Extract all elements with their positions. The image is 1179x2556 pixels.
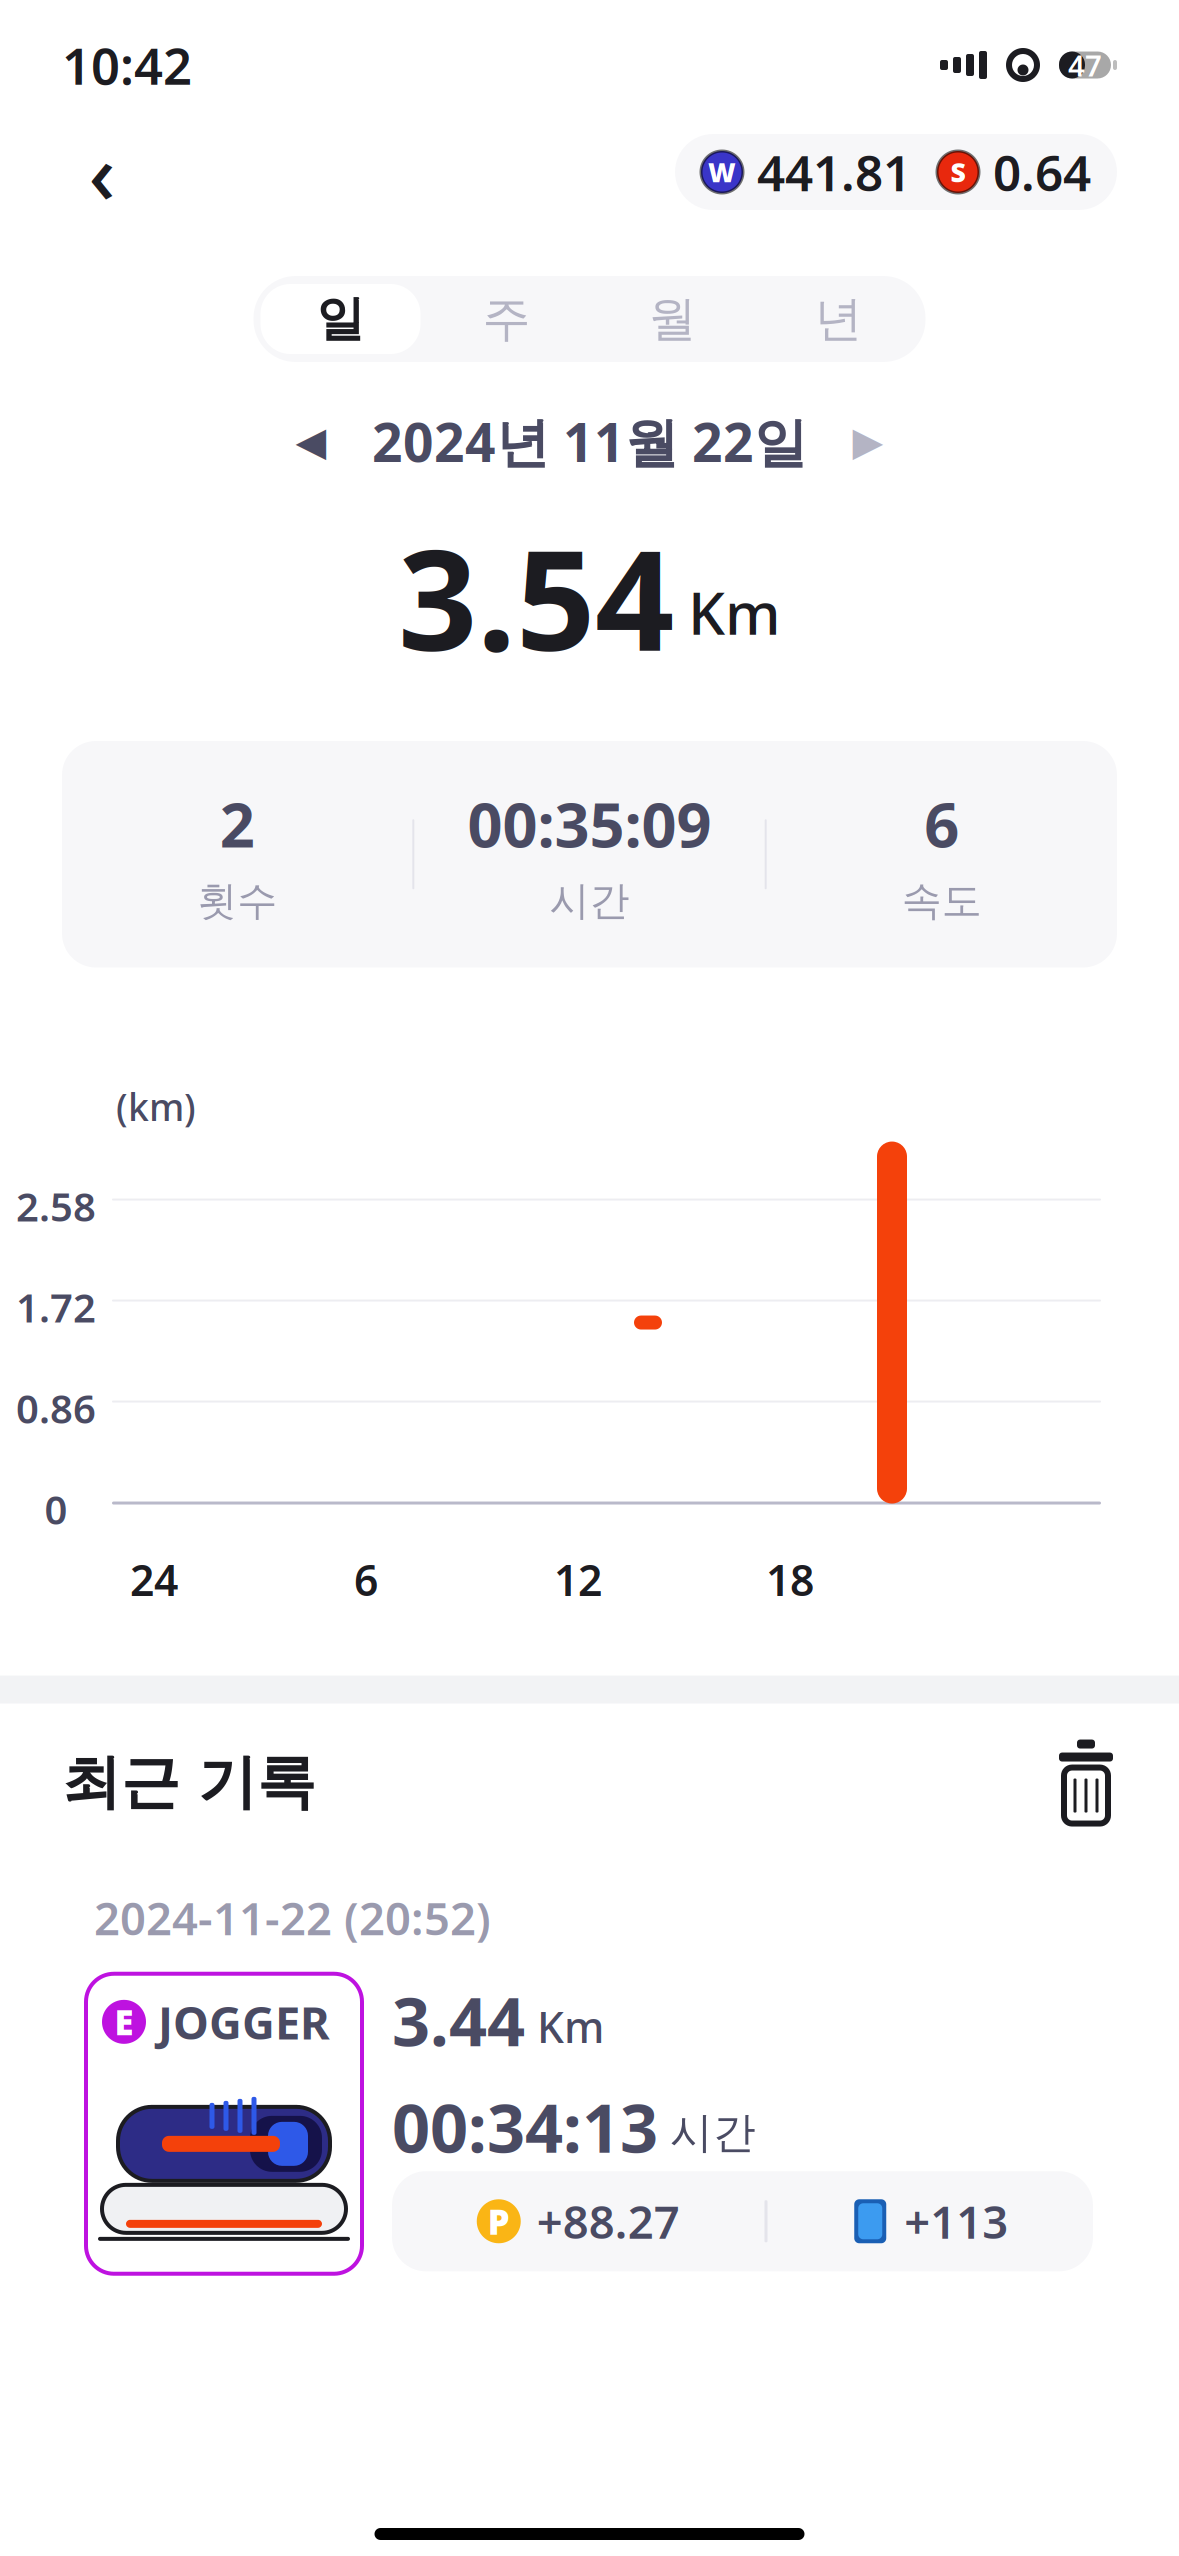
staticText: 1.72 (16, 1280, 96, 1334)
staticText: JOGGER (158, 1992, 330, 2052)
staticText: Km (537, 1998, 604, 2055)
staticText: 24 (130, 1551, 178, 1608)
staticText: 6 (924, 783, 959, 864)
staticText: 속도 (902, 876, 982, 925)
staticText: ▶ (852, 419, 883, 464)
staticText: ‹ (88, 117, 115, 227)
button[interactable]: 일 (257, 280, 423, 358)
button[interactable]: W (675, 134, 1117, 210)
staticText: E (114, 1999, 133, 2045)
staticText: 시간 (670, 2107, 756, 2159)
button[interactable]: Delete records (1055, 1741, 1117, 1823)
staticText: +113 (904, 2191, 1008, 2251)
staticText: 시간 (549, 876, 629, 925)
staticText: 2024년 11월 22일 (372, 406, 807, 477)
staticText: 2024-11-22 (20:52) (94, 1887, 491, 1948)
button[interactable]: Back (62, 132, 142, 212)
staticText: 0.64 (993, 139, 1091, 205)
staticText: 00:35:09 (467, 783, 711, 864)
staticText: 18 (766, 1551, 814, 1608)
button[interactable]: 월 (589, 280, 755, 358)
button[interactable]: Next day (833, 411, 903, 471)
staticText: 일 (316, 289, 364, 348)
button[interactable]: 2024-11-22 (20:52) (62, 1861, 1117, 2300)
staticText: 최근 기록 (62, 1746, 316, 1819)
staticText: 0 (44, 1482, 67, 1536)
staticText: 월 (648, 289, 696, 348)
button[interactable]: Previous day (276, 411, 346, 471)
staticText: 00:34:13 (392, 2083, 658, 2171)
staticText: 3.44 (392, 1976, 525, 2065)
staticText: (km) (116, 1082, 196, 1131)
staticText: +88.27 (537, 2191, 680, 2251)
button[interactable]: 년 (755, 280, 921, 358)
staticText: P (488, 2198, 510, 2244)
staticText: 47 (1068, 45, 1102, 84)
staticText: 년 (814, 289, 862, 348)
staticText: S (950, 154, 965, 190)
staticText: 441.81 (757, 139, 911, 205)
staticText: 10:42 (62, 31, 192, 99)
staticText: 3.54 (398, 505, 674, 689)
staticText: 0.86 (16, 1381, 96, 1435)
staticText: 횟수 (197, 876, 277, 925)
staticText: 주 (482, 289, 530, 348)
staticText: ◀ (295, 419, 326, 464)
staticText: 2.58 (16, 1179, 96, 1233)
staticText: Km (688, 573, 781, 651)
staticText: 6 (354, 1551, 378, 1608)
staticText: 2 (220, 783, 255, 864)
staticText: W (708, 154, 736, 190)
button[interactable]: 주 (423, 280, 589, 358)
staticText: 12 (554, 1551, 602, 1608)
